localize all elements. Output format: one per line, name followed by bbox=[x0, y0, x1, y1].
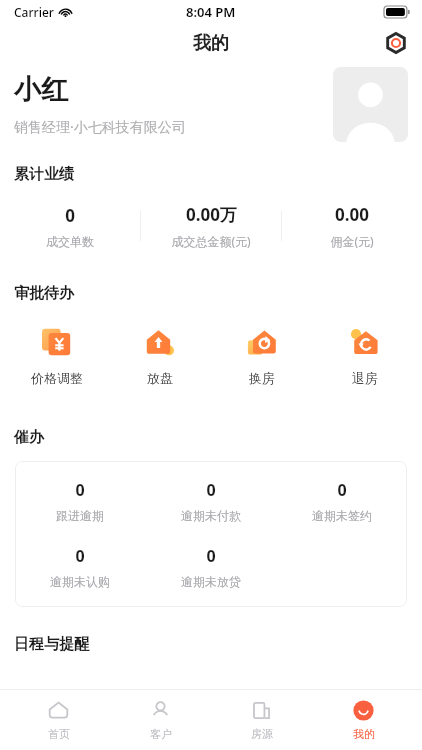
staticText: 催办 bbox=[14, 428, 44, 447]
button[interactable]: 0 bbox=[0, 204, 140, 249]
staticText: 逾期未签约 bbox=[312, 508, 372, 523]
staticText: 0.00万 bbox=[186, 203, 237, 226]
button[interactable]: 换房 bbox=[216, 325, 308, 386]
staticText: 逾期未认购 bbox=[50, 574, 110, 589]
button[interactable]: 0.00万 bbox=[141, 203, 281, 249]
button[interactable]: 0 bbox=[145, 545, 276, 589]
staticText: 跟进逾期 bbox=[56, 508, 104, 523]
staticText: 0 bbox=[65, 204, 75, 227]
button[interactable]: 价格调整 bbox=[11, 325, 103, 386]
staticText: 佣金(元) bbox=[330, 233, 374, 249]
staticText: 0 bbox=[206, 479, 216, 501]
staticText: 日程与提醒 bbox=[14, 635, 89, 654]
staticText: Carrier bbox=[14, 4, 54, 20]
button[interactable]: 0 bbox=[145, 479, 276, 523]
staticText: 0 bbox=[75, 545, 85, 567]
staticText: 我的 bbox=[353, 727, 375, 741]
button[interactable]: 放盘 bbox=[114, 325, 206, 386]
button[interactable]: 0.00 bbox=[282, 203, 422, 249]
button[interactable]: Settings bbox=[384, 31, 408, 55]
staticText: 逾期未付款 bbox=[181, 508, 241, 523]
button[interactable]: 0 bbox=[15, 545, 145, 589]
staticText: 0.00 bbox=[335, 203, 369, 226]
button[interactable]: 退房 bbox=[319, 325, 411, 386]
button[interactable]: 客户 bbox=[118, 690, 203, 750]
button[interactable]: 房源 bbox=[219, 690, 304, 750]
staticText: 0 bbox=[206, 545, 216, 567]
staticText: 0 bbox=[75, 479, 85, 501]
button[interactable]: 0 bbox=[276, 479, 407, 523]
staticText: 累计业绩 bbox=[14, 165, 74, 184]
button[interactable]: Avatar bbox=[333, 67, 408, 142]
staticText: 退房 bbox=[352, 370, 378, 386]
staticText: 0 bbox=[337, 479, 347, 501]
staticText: 小红 bbox=[14, 73, 68, 107]
staticText: 首页 bbox=[48, 727, 70, 741]
staticText: 销售经理·小七科技有限公司 bbox=[14, 117, 186, 136]
button[interactable]: 我的 bbox=[321, 690, 406, 750]
button[interactable]: 首页 bbox=[16, 690, 101, 750]
staticText: 成交总金额(元) bbox=[171, 233, 251, 249]
staticText: 我的 bbox=[193, 32, 229, 55]
button[interactable]: 0 bbox=[15, 479, 145, 523]
button[interactable]: 0 bbox=[15, 461, 407, 607]
staticText: 审批待办 bbox=[14, 284, 74, 303]
staticText: 房源 bbox=[251, 727, 273, 741]
staticText: 换房 bbox=[249, 370, 275, 386]
staticText: 逾期未放贷 bbox=[181, 574, 241, 589]
staticText: 价格调整 bbox=[31, 370, 83, 386]
staticText: 放盘 bbox=[147, 370, 173, 386]
staticText: 客户 bbox=[150, 727, 172, 741]
staticText: 成交单数 bbox=[46, 234, 94, 249]
staticText: 8:04 PM bbox=[186, 3, 236, 21]
